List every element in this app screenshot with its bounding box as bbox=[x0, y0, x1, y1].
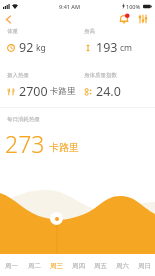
staticText: 周二 bbox=[28, 262, 41, 270]
staticText: kg bbox=[36, 42, 46, 54]
button[interactable]: 周四 bbox=[67, 255, 89, 276]
button[interactable]: 周一 bbox=[0, 255, 23, 276]
button[interactable]: 周日 bbox=[133, 255, 155, 276]
staticText: 24.0 bbox=[96, 83, 121, 100]
staticText: cm bbox=[120, 42, 133, 54]
staticText: 体重 bbox=[7, 28, 18, 35]
staticText: 周一 bbox=[5, 262, 18, 270]
staticText: 周日 bbox=[138, 262, 151, 270]
button[interactable]: 身高 bbox=[77, 26, 155, 58]
button[interactable]: 摄入热量 bbox=[0, 70, 77, 102]
staticText: 卡路里 bbox=[49, 141, 79, 154]
button[interactable]: Back bbox=[0, 12, 16, 26]
staticText: 卡路里 bbox=[50, 86, 76, 97]
staticText: 2700 bbox=[19, 83, 48, 100]
staticText: 周五 bbox=[94, 262, 107, 270]
staticText: 身体质量指数 bbox=[84, 72, 117, 79]
button[interactable]: Data point bbox=[50, 212, 63, 225]
staticText: 身高 bbox=[84, 28, 95, 35]
staticText: 每日消耗热量 bbox=[7, 116, 40, 123]
button[interactable]: 身体质量指数 bbox=[77, 70, 155, 102]
staticText: 周三 bbox=[50, 262, 63, 270]
button[interactable]: 周三 bbox=[45, 255, 67, 276]
staticText: 92 bbox=[19, 39, 34, 56]
button[interactable]: Settings bbox=[136, 12, 150, 26]
staticText: 摄入热量 bbox=[7, 72, 29, 79]
button[interactable]: 周五 bbox=[89, 255, 111, 276]
button[interactable]: Notifications bbox=[117, 12, 131, 26]
staticText: 周四 bbox=[72, 262, 85, 270]
staticText: 273 bbox=[5, 128, 45, 159]
staticText: 193 bbox=[96, 39, 118, 56]
button[interactable]: 体重 bbox=[0, 26, 77, 58]
staticText: 100% bbox=[126, 3, 141, 10]
button[interactable]: 周二 bbox=[23, 255, 45, 276]
button[interactable]: 周六 bbox=[111, 255, 133, 276]
staticText: 周六 bbox=[116, 262, 129, 270]
staticText: 9:41 AM bbox=[59, 3, 81, 10]
